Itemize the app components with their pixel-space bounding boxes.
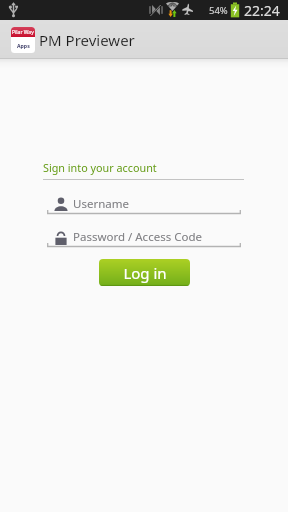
staticText: Log in: [123, 263, 167, 283]
staticText: Username: [73, 196, 129, 212]
staticText: 54%: [209, 4, 228, 17]
button[interactable]: Username: [47, 193, 241, 215]
staticText: Password / Access Code: [73, 229, 202, 245]
staticText: Sign into your account: [43, 160, 157, 175]
staticText: Apps: [17, 42, 30, 49]
button[interactable]: Log in: [99, 259, 190, 286]
staticText: 22:24: [244, 1, 280, 20]
staticText: PM Previewer: [39, 30, 135, 50]
staticText: Pilar Way: [12, 29, 34, 36]
button[interactable]: Password / Access Code: [47, 226, 241, 248]
